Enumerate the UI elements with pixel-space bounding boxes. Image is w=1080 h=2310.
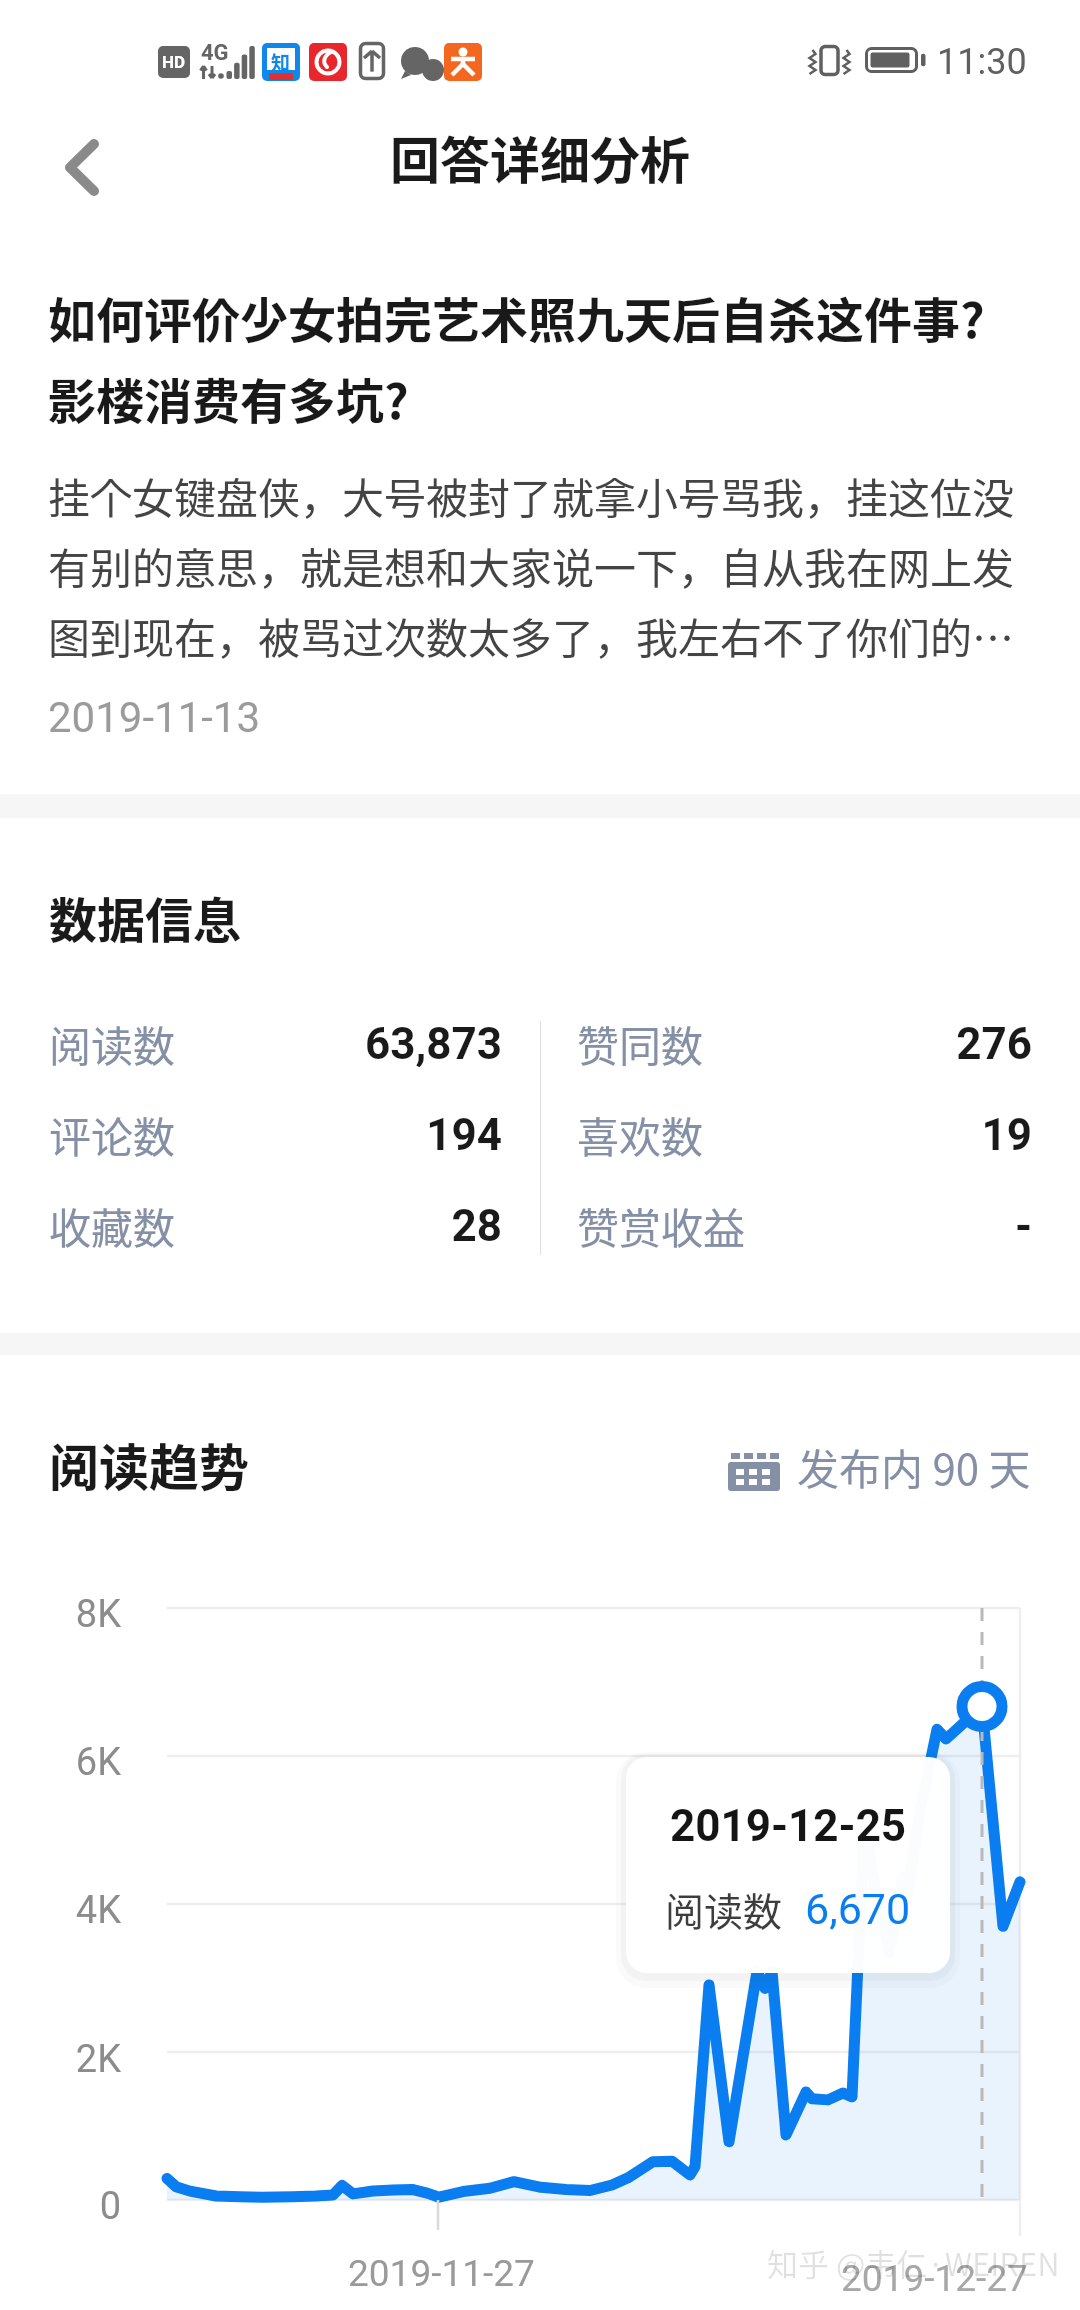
button[interactable]: 发布内 90 天 — [728, 1436, 1031, 1497]
staticText: HD — [162, 52, 186, 72]
staticText: 知 — [271, 48, 291, 70]
staticText: 2019-11-13 — [48, 693, 261, 742]
button[interactable]: 赞同数 — [540, 998, 1080, 1089]
button[interactable]: Back — [18, 92, 146, 220]
button[interactable]: 赞赏收益 — [540, 1180, 1080, 1271]
staticText: 发布内 90 天 — [797, 1436, 1031, 1497]
staticText: 2019-11-27 — [348, 2252, 535, 2295]
staticText: - — [747, 1200, 1032, 1252]
staticText: 194 — [177, 1109, 502, 1161]
button[interactable]: 阅读数 — [0, 998, 540, 1089]
staticText: 赞赏收益 — [577, 1195, 746, 1256]
button[interactable]: 评论数 — [0, 1089, 540, 1180]
staticText: 如何评价少女拍完艺术照九天后自杀这件事?影楼消费有多坑? — [48, 282, 1032, 433]
staticText: 阅读数 — [49, 1013, 176, 1074]
staticText: 挂个女键盘侠，大号被封了就拿小号骂我，挂这位没有别的意思，就是想和大家说一下，自… — [48, 465, 1032, 666]
button[interactable]: 喜欢数 — [540, 1089, 1080, 1180]
staticText: 28 — [177, 1200, 502, 1252]
button[interactable]: 收藏数 — [0, 1180, 540, 1271]
staticText: 63,873 — [177, 1018, 502, 1070]
staticText: 阅读数 — [665, 1881, 783, 1937]
staticText: 0 — [0, 2184, 121, 2229]
staticText: 276 — [705, 1018, 1032, 1070]
staticText: 阅读趋势 — [49, 1428, 249, 1500]
staticText: 知乎 @韦仁·WEIREN — [767, 2240, 1060, 2285]
staticText: 收藏数 — [49, 1195, 176, 1256]
staticText: 2K — [0, 2037, 121, 2082]
staticText: 2019-12-25 — [670, 1800, 907, 1852]
staticText: 2019-12-27 — [841, 2257, 1028, 2300]
staticText: 回答详细分析 — [390, 121, 690, 193]
staticText: 6,670 — [805, 1884, 911, 1934]
button[interactable]: 如何评价少女拍完艺术照九天后自杀这件事?影楼消费有多坑? — [0, 267, 1080, 777]
staticText: 19 — [705, 1109, 1032, 1161]
staticText: 喜欢数 — [577, 1104, 704, 1165]
staticText: 赞同数 — [577, 1013, 704, 1074]
staticText: 8K — [0, 1592, 121, 1637]
staticText: 评论数 — [49, 1104, 176, 1165]
staticText: 4K — [0, 1888, 121, 1933]
staticText: 6K — [0, 1740, 121, 1785]
staticText: 数据信息 — [49, 882, 242, 952]
staticText: 11:30 — [937, 41, 1027, 83]
staticText: 4G — [201, 40, 229, 66]
